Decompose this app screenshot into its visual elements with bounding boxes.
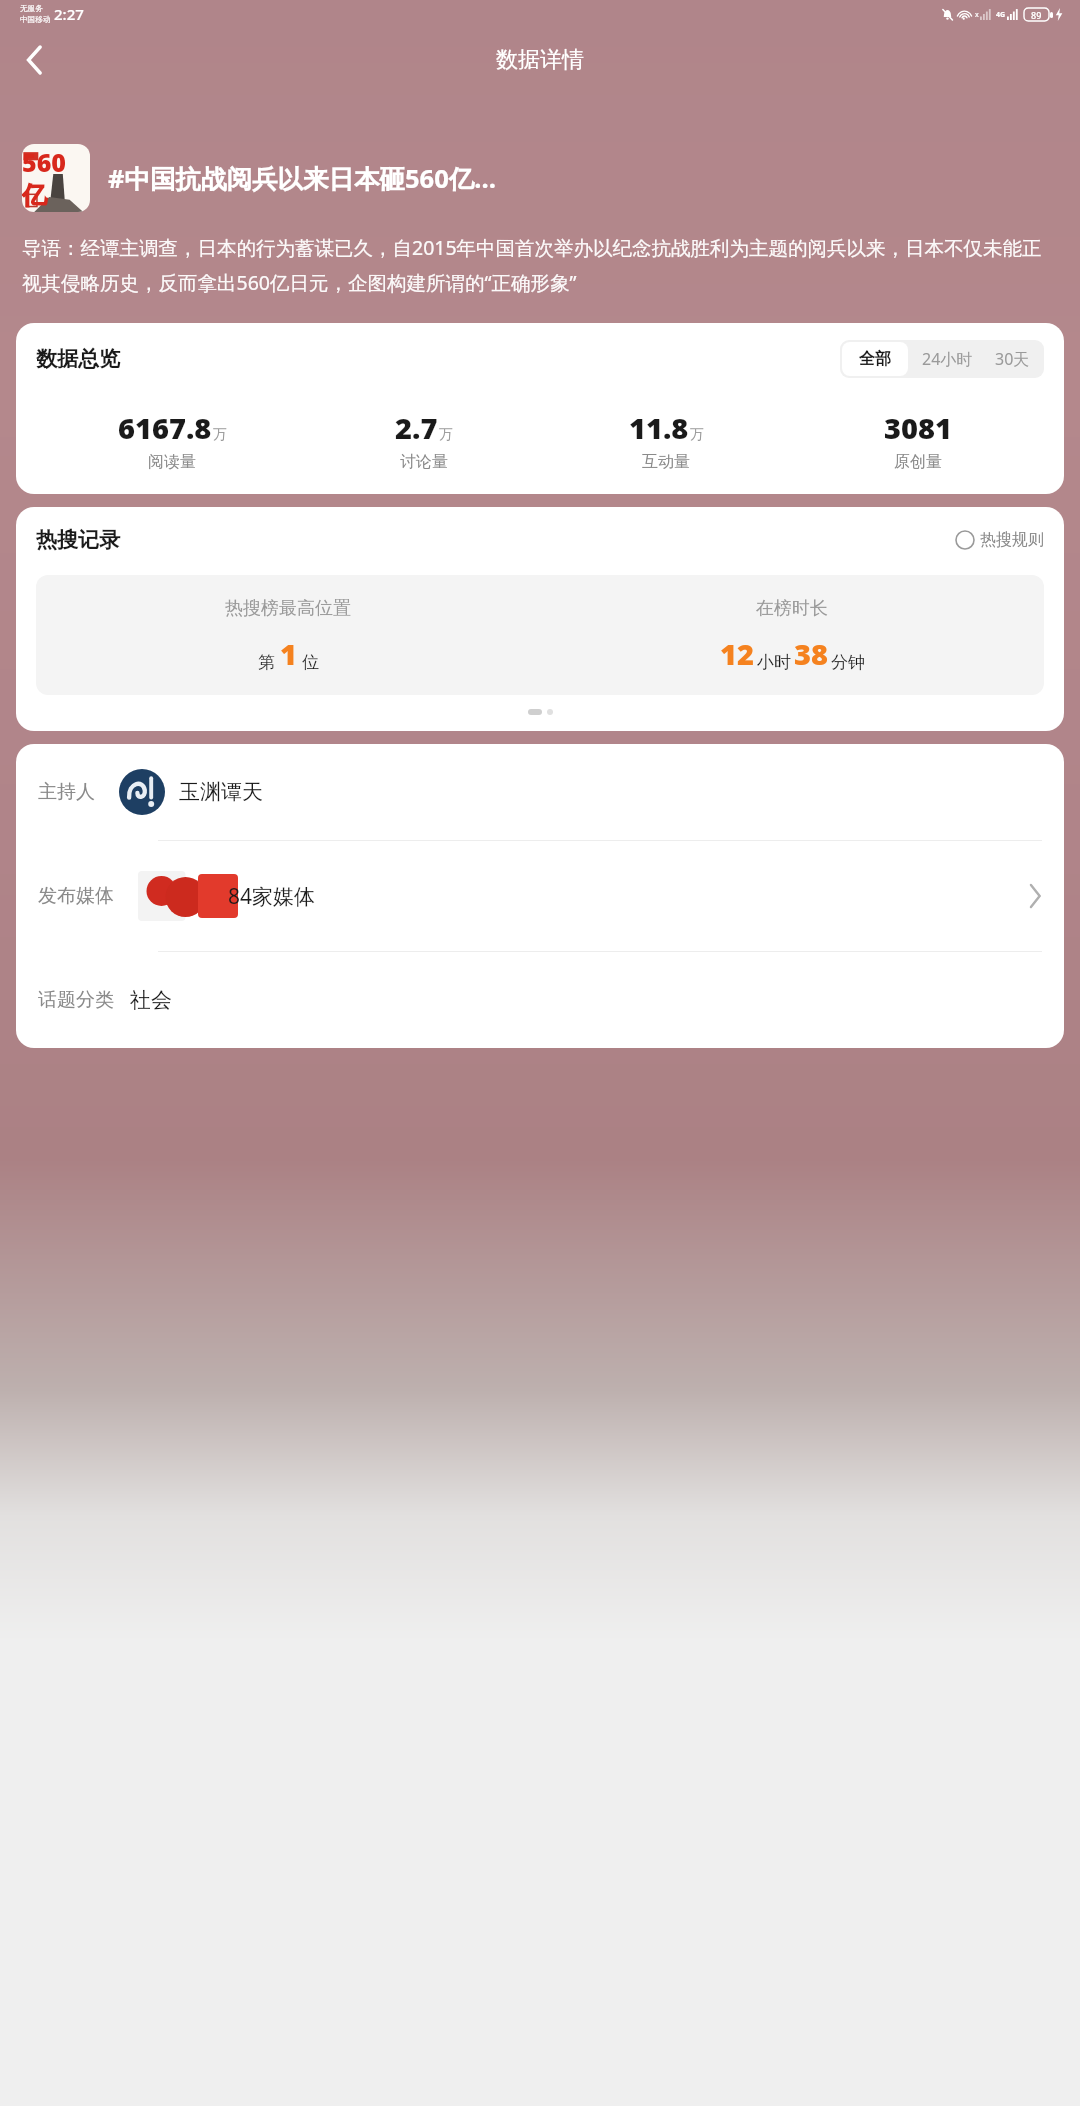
staticText: 万: [690, 426, 704, 444]
staticText: x: [975, 10, 979, 20]
staticText: 分钟: [831, 652, 865, 673]
button[interactable]: 全部: [842, 342, 908, 376]
staticText: 小时: [757, 652, 791, 673]
staticText: 2:27: [54, 4, 84, 24]
button[interactable]: 热搜规则: [955, 530, 1044, 550]
staticText: 无服务: [20, 4, 43, 14]
staticText: 万: [213, 426, 227, 444]
staticText: 84家媒体: [228, 882, 316, 911]
staticText: 12: [720, 634, 754, 673]
button[interactable]: Back: [8, 34, 60, 86]
button[interactable]: 话题分类: [38, 952, 1064, 1048]
staticText: 3081: [884, 408, 952, 447]
staticText: 30天: [995, 348, 1030, 370]
staticText: 4G: [996, 10, 1006, 20]
button[interactable]: 发布媒体: [38, 841, 1064, 951]
staticText: 热搜规则: [980, 530, 1044, 550]
staticText: 导语：经谭主调查，日本的行为蓄谋已久，自2015年中国首次举办以纪念抗战胜利为主…: [22, 234, 1058, 295]
staticText: 全部: [859, 349, 891, 369]
staticText: 1: [280, 634, 297, 673]
staticText: 2.7: [395, 408, 438, 447]
staticText: 第: [258, 652, 275, 673]
staticText: 位: [302, 652, 319, 673]
staticText: 万: [439, 426, 453, 444]
staticText: 数据详情: [496, 46, 584, 74]
staticText: 24小时: [922, 348, 973, 370]
staticText: 89: [1031, 9, 1042, 21]
staticText: 热搜记录: [36, 527, 120, 553]
staticText: 阅读量: [148, 452, 196, 472]
staticText: 热搜榜最高位置: [225, 597, 351, 620]
button[interactable]: 主持人: [38, 744, 1064, 840]
button[interactable]: 560亿: [22, 144, 90, 212]
button[interactable]: 30天: [985, 340, 1044, 378]
staticText: 在榜时长: [756, 597, 828, 620]
staticText: #中国抗战阅兵以来日本砸560亿…: [108, 161, 1058, 196]
staticText: 6167.8: [118, 408, 212, 447]
staticText: 发布媒体: [38, 884, 114, 908]
staticText: 讨论量: [400, 452, 448, 472]
staticText: 玉渊谭天: [179, 779, 263, 805]
button[interactable]: 24小时: [910, 340, 985, 378]
staticText: 社会: [130, 987, 172, 1013]
staticText: 数据总览: [36, 346, 120, 372]
staticText: 原创量: [894, 452, 942, 472]
staticText: 互动量: [642, 452, 690, 472]
staticText: 560亿: [22, 145, 90, 212]
staticText: 中国移动: [20, 15, 51, 25]
staticText: 38: [794, 634, 828, 673]
staticText: 话题分类: [38, 988, 114, 1012]
staticText: 主持人: [38, 780, 95, 804]
staticText: 11.8: [629, 408, 689, 447]
